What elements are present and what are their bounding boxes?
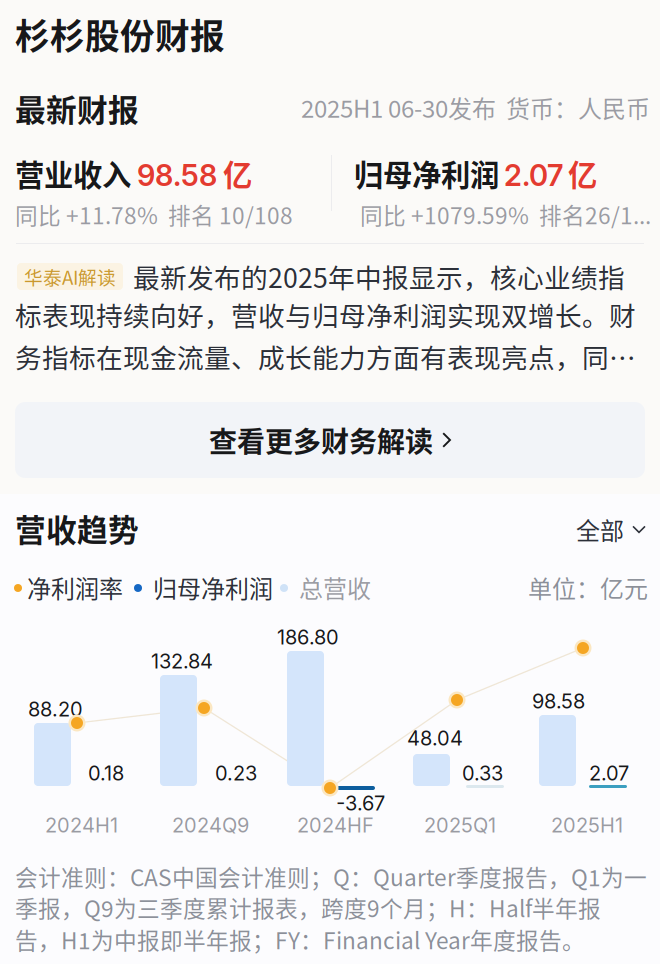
staticText: 季报，Q9为三季度累计报表，跨度9个月；H：Half半年报 (15, 891, 601, 924)
staticText: 2.07 (589, 761, 629, 785)
staticText: 2.07 (504, 158, 563, 193)
staticText: 总营收 (299, 570, 371, 605)
staticText: -3.67 (336, 791, 385, 815)
staticText: 单位：亿元 (528, 570, 648, 605)
staticText: 最新财报 (15, 86, 139, 130)
staticText: 亿 (568, 152, 597, 194)
staticText: 2024HF (297, 813, 374, 837)
staticText: 0.23 (215, 761, 257, 785)
staticText: 同比 +11.78% 排名 10/108 (15, 198, 293, 231)
staticText: 98.58 (532, 689, 585, 713)
button[interactable]: 全部 (576, 512, 646, 547)
staticText: 48.04 (407, 726, 463, 750)
staticText: 华泰AI解读 (24, 263, 116, 290)
staticText: 净利润率 (27, 570, 123, 605)
staticText: 归母净利润 (354, 152, 499, 194)
staticText: 营收趋势 (15, 506, 139, 550)
staticText: 2025H1 06-30发布 货币：人民币 (301, 90, 650, 125)
staticText: 营业收入 (15, 152, 131, 194)
staticText: 0.33 (462, 761, 503, 785)
staticText: 全部 (576, 512, 624, 547)
staticText: 告，H1为中报即半年报；FY：Financial Year年度报告。 (15, 923, 585, 956)
staticText: 132.84 (151, 649, 213, 673)
staticText: 最新发布的2025年中报显示，核心业绩指 (133, 257, 625, 296)
staticText: 186.80 (277, 625, 339, 649)
staticText: 务指标在现金流量、成长能力方面有表现亮点，同… (15, 337, 636, 376)
staticText: 88.20 (28, 697, 83, 721)
staticText: 2024Q9 (172, 813, 249, 837)
button[interactable]: 查看更多财务解读 (15, 402, 645, 478)
staticText: 2025H1 (551, 813, 623, 837)
staticText: 0.18 (88, 761, 124, 785)
staticText: 2025Q1 (424, 813, 496, 837)
staticText: 归母净利润 (153, 570, 273, 605)
staticText: 杉杉股份财报 (15, 9, 225, 59)
staticText: 标表现持续向好，营收与归母净利润实现双增长。财 (15, 295, 636, 334)
staticText: 查看更多财务解读 (209, 420, 433, 460)
staticText: 2024H1 (45, 813, 118, 837)
staticText: 亿 (223, 152, 252, 194)
staticText: 98.58 (137, 158, 217, 193)
staticText: 会计准则：CAS中国会计准则；Q：Quarter季度报告，Q1为一 (15, 860, 647, 893)
staticText: 同比 +1079.59% 排名26/1... (360, 198, 651, 231)
